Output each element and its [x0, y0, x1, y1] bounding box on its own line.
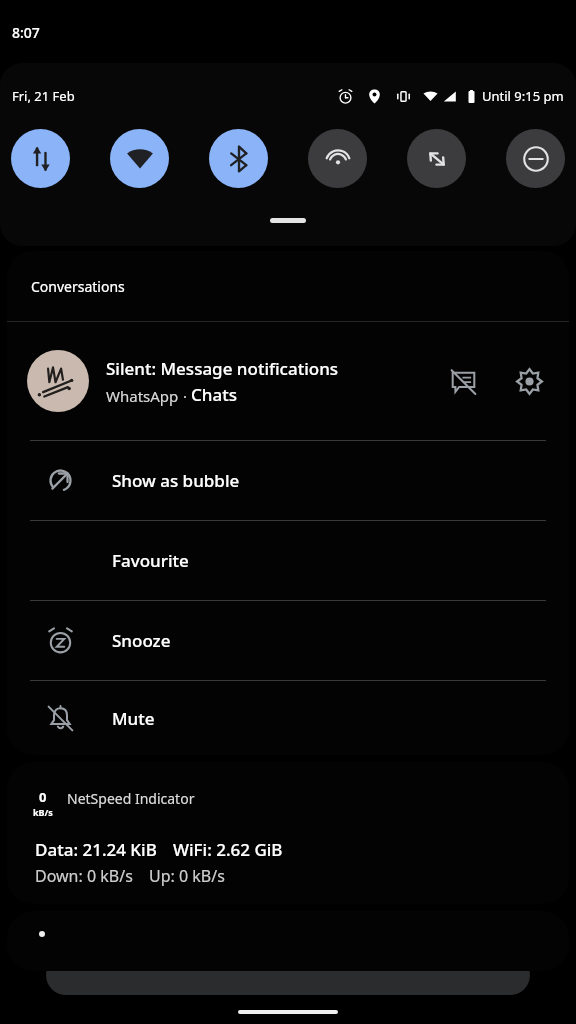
button[interactable]: Snooze: [7, 601, 569, 680]
button[interactable]: Wi-Fi: [110, 129, 169, 188]
button[interactable]: 0: [7, 762, 569, 904]
staticText: Down: 0 kB/s: [35, 865, 133, 887]
staticText: Data: 21.24 KiB: [35, 838, 157, 861]
button[interactable]: Settings: [509, 361, 549, 401]
staticText: Show as bubble: [112, 469, 240, 492]
staticText: Chats: [191, 383, 237, 406]
staticText: Fri, 21 Feb: [12, 87, 75, 105]
staticText: Favourite: [112, 549, 189, 572]
button[interactable]: Silent: Message notifications: [7, 322, 569, 440]
staticText: WhatsApp: [106, 386, 179, 406]
staticText: Up: 0 kB/s: [149, 865, 225, 887]
staticText: 8:07: [12, 23, 40, 42]
button[interactable]: [7, 911, 569, 971]
staticText: Silent: Message notifications: [106, 357, 339, 380]
staticText: 0: [39, 788, 47, 806]
staticText: WiFi: 2.62 GiB: [173, 838, 283, 861]
button[interactable]: Mute: [7, 681, 569, 755]
button[interactable]: Do not disturb: [506, 129, 565, 188]
staticText: kB/s: [33, 806, 53, 818]
button[interactable]: Bluetooth: [209, 129, 268, 188]
staticText: Mute: [112, 707, 155, 730]
staticText: ·: [179, 386, 191, 406]
staticText: Snooze: [112, 629, 171, 652]
staticText: NetSpeed Indicator: [67, 789, 195, 808]
staticText: Until 9:15 pm: [482, 87, 564, 105]
button[interactable]: Favourite: [7, 521, 569, 600]
button[interactable]: Show as bubble: [7, 441, 569, 520]
button[interactable]: Turn off notifications: [443, 361, 483, 401]
staticText: Conversations: [31, 277, 125, 296]
button[interactable]: Hotspot: [308, 129, 367, 188]
button[interactable]: Internet: [11, 129, 70, 188]
button[interactable]: Auto rotate: [407, 129, 466, 188]
